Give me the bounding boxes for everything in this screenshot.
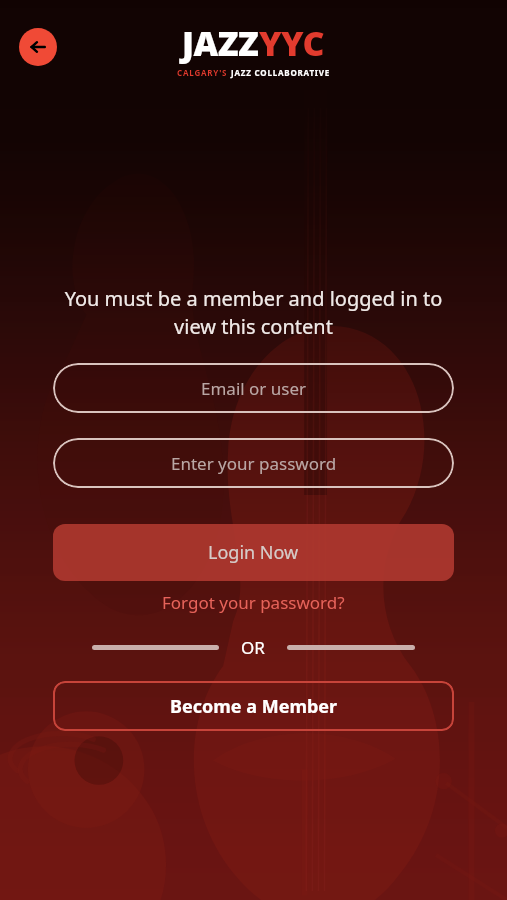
staticText: JAZZ COLLABORATIVE [231,67,330,78]
staticText: Email or user [201,377,307,400]
staticText: CALGARY'S [177,67,231,78]
staticText: YYC [259,20,325,66]
button[interactable]: Forgot your password? [152,585,355,620]
staticText: Login Now [208,540,299,565]
button[interactable]: Email or user [53,363,454,413]
button[interactable]: Become a Member [53,681,454,731]
button[interactable]: Back [19,28,57,66]
button[interactable]: Enter your password [53,438,454,488]
staticText: OR [241,636,265,659]
staticText: Forgot your password? [162,591,345,614]
staticText: You must be a member and logged in to vi… [50,285,457,340]
staticText: Enter your password [171,452,337,475]
staticText: Become a Member [170,694,338,719]
staticText: JAZZ [182,20,259,66]
button[interactable]: Login Now [53,524,454,581]
